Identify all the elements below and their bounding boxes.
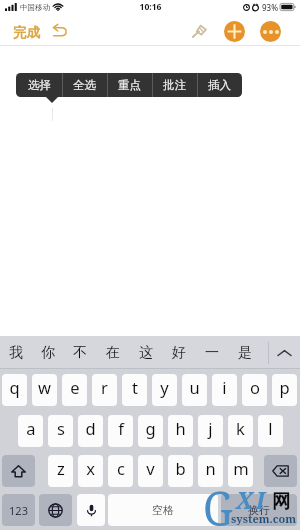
button[interactable]: 换行 — [221, 494, 297, 526]
button[interactable]: l — [258, 415, 283, 447]
button[interactable]: o — [242, 374, 267, 406]
staticText: l — [268, 417, 273, 439]
button[interactable]: 空格 — [108, 494, 218, 526]
staticText: e — [70, 376, 80, 398]
staticText: v — [146, 457, 155, 479]
button[interactable]: 重点 — [107, 73, 152, 97]
staticText: 选择 — [28, 78, 51, 92]
button[interactable]: 插入 — [197, 73, 242, 97]
staticText: 一 — [205, 344, 219, 362]
button[interactable]: p — [272, 374, 297, 406]
staticText: 是 — [238, 344, 252, 362]
staticText: x — [86, 457, 95, 479]
button[interactable]: 在 — [96, 336, 129, 369]
button[interactable]: Undo — [48, 20, 70, 42]
staticText: p — [279, 376, 290, 398]
button[interactable]: 是 — [228, 336, 261, 369]
staticText: 这 — [139, 344, 153, 362]
staticText: w — [38, 376, 51, 398]
staticText: i — [222, 376, 227, 398]
staticText: a — [26, 417, 36, 439]
staticText: u — [189, 376, 200, 398]
button[interactable]: q — [2, 374, 27, 406]
button[interactable]: a — [18, 415, 43, 447]
button[interactable]: n — [198, 455, 223, 487]
button[interactable]: 我 — [0, 336, 32, 369]
button[interactable]: g — [138, 415, 163, 447]
staticText: 插入 — [208, 78, 231, 92]
staticText: 123 — [9, 503, 28, 518]
button[interactable]: h — [168, 415, 193, 447]
button[interactable]: w — [32, 374, 57, 406]
staticText: g — [145, 417, 156, 439]
staticText: t — [132, 376, 138, 398]
button[interactable]: Add — [224, 21, 245, 42]
button[interactable]: More candidates — [268, 336, 300, 369]
button[interactable]: s — [48, 415, 73, 447]
button[interactable]: j — [198, 415, 223, 447]
button[interactable]: m — [228, 455, 253, 487]
button[interactable]: c — [108, 455, 133, 487]
button[interactable]: d — [78, 415, 103, 447]
staticText: 10:16 — [139, 1, 162, 13]
button[interactable]: r — [92, 374, 117, 406]
button[interactable]: z — [48, 455, 73, 487]
staticText: f — [118, 417, 124, 439]
button[interactable]: Backspace — [264, 455, 297, 487]
button[interactable]: 好 — [162, 336, 195, 369]
button[interactable]: k — [228, 415, 253, 447]
staticText: XI — [236, 484, 269, 515]
staticText: y — [160, 376, 169, 398]
staticText: k — [236, 417, 245, 439]
staticText: s — [57, 417, 65, 439]
staticText: system.com — [231, 511, 297, 526]
button[interactable]: i — [212, 374, 237, 406]
button[interactable]: More options — [260, 21, 281, 42]
staticText: 中国移动 — [20, 3, 50, 12]
staticText: 批注 — [163, 78, 186, 92]
staticText: 完成 — [13, 24, 40, 41]
button[interactable]: 一 — [195, 336, 228, 369]
button[interactable]: b — [168, 455, 193, 487]
staticText: 空格 — [152, 503, 174, 517]
button[interactable]: 不 — [64, 336, 96, 369]
staticText: G — [203, 475, 233, 530]
button[interactable]: 完成 — [9, 22, 44, 43]
button[interactable]: 123 — [2, 494, 35, 526]
staticText: n — [205, 457, 216, 479]
staticText: j — [208, 417, 213, 439]
button[interactable]: Brush — [187, 19, 210, 42]
staticText: o — [250, 376, 260, 398]
staticText: m — [233, 457, 249, 479]
staticText: z — [57, 457, 65, 479]
button[interactable]: 全选 — [62, 73, 107, 97]
button[interactable]: x — [78, 455, 103, 487]
button[interactable]: y — [152, 374, 177, 406]
staticText: 不 — [73, 344, 87, 362]
staticText: 好 — [172, 344, 186, 362]
button[interactable]: Voice input — [77, 494, 105, 526]
staticText: q — [9, 376, 20, 398]
button[interactable]: 这 — [129, 336, 162, 369]
staticText: b — [175, 457, 186, 479]
staticText: h — [175, 417, 186, 439]
staticText: 在 — [106, 344, 120, 362]
button[interactable]: e — [62, 374, 87, 406]
staticText: 全选 — [73, 78, 96, 92]
staticText: 我 — [9, 344, 23, 362]
button[interactable]: Shift — [2, 455, 35, 487]
button[interactable]: v — [138, 455, 163, 487]
button[interactable]: 选择 — [16, 73, 62, 97]
button[interactable]: t — [122, 374, 147, 406]
button[interactable]: 你 — [32, 336, 64, 369]
button[interactable]: u — [182, 374, 207, 406]
staticText: 93% — [262, 2, 278, 13]
staticText: 你 — [41, 344, 55, 362]
button[interactable]: Switch language — [39, 494, 72, 526]
staticText: 网 — [272, 490, 291, 513]
staticText: 重点 — [118, 78, 141, 92]
button[interactable]: f — [108, 415, 133, 447]
staticText: c — [117, 457, 125, 479]
staticText: 换行 — [248, 503, 270, 517]
button[interactable]: 批注 — [152, 73, 197, 97]
